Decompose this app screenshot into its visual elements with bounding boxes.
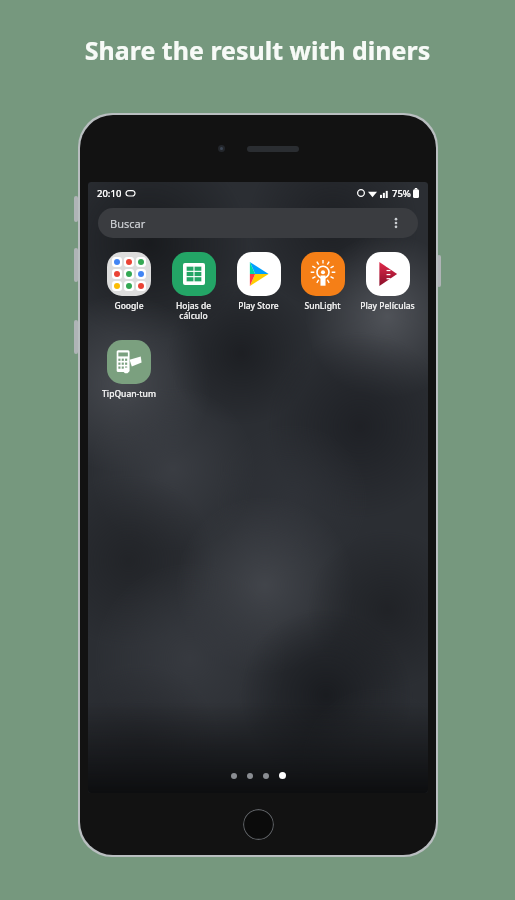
staticText: Play Películas — [360, 300, 415, 312]
staticText: 75% — [392, 187, 411, 200]
button[interactable]: Volume down — [74, 248, 78, 282]
button[interactable]: SunLight — [292, 252, 353, 312]
button[interactable]: More options — [386, 213, 406, 233]
staticText: Google — [114, 300, 144, 312]
button[interactable]: Bixby — [74, 320, 78, 354]
button[interactable]: Power — [437, 255, 441, 287]
staticText: Share the result with diners — [0, 33, 515, 67]
staticText: 20:10 — [97, 187, 122, 200]
staticText: Hojas de cálculo — [163, 300, 224, 322]
button[interactable]: Google — [98, 252, 159, 312]
button[interactable]: Play Store — [228, 252, 289, 312]
button[interactable]: Play Películas — [357, 252, 418, 312]
button[interactable]: Page 4 — [279, 772, 286, 779]
button[interactable]: Page 3 — [263, 773, 269, 779]
staticText: TipQuan-tum — [102, 388, 156, 400]
button[interactable]: Buscar — [98, 208, 418, 238]
button[interactable]: Page 2 — [247, 773, 253, 779]
button[interactable]: Home — [243, 809, 274, 840]
button[interactable]: Hojas de cálculo — [163, 252, 224, 322]
staticText: SunLight — [304, 300, 341, 312]
button[interactable]: Volume up — [74, 196, 78, 222]
button[interactable]: Page 1 — [231, 773, 237, 779]
staticText: Play Store — [238, 300, 279, 312]
staticText: Buscar — [110, 216, 146, 231]
button[interactable]: TipQuan-tum — [98, 340, 159, 400]
